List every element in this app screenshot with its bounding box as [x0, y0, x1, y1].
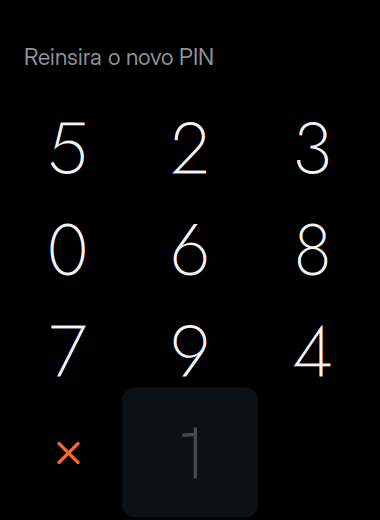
button[interactable]: 6 [131, 201, 249, 299]
staticText: Reinsira o novo PIN [24, 43, 214, 70]
staticText: 2 [170, 96, 209, 200]
staticText: 4 [292, 299, 333, 403]
button[interactable]: 1 [122, 387, 258, 517]
staticText: 9 [170, 299, 210, 403]
button[interactable]: 9 [131, 302, 249, 400]
staticText: 8 [293, 198, 331, 302]
button[interactable]: 8 [253, 201, 371, 299]
button[interactable]: 7 [8, 302, 126, 400]
button[interactable]: 0 [8, 201, 126, 299]
staticText: 7 [49, 299, 86, 403]
button[interactable]: 5 [8, 99, 126, 197]
staticText: 0 [47, 198, 88, 302]
staticText: 6 [170, 198, 210, 302]
button[interactable]: 2 [131, 99, 249, 197]
staticText: 3 [292, 96, 332, 200]
button[interactable]: Apagar [9, 404, 127, 502]
button[interactable]: 4 [253, 302, 371, 400]
button[interactable]: 3 [253, 99, 371, 197]
staticText: 5 [47, 96, 87, 200]
